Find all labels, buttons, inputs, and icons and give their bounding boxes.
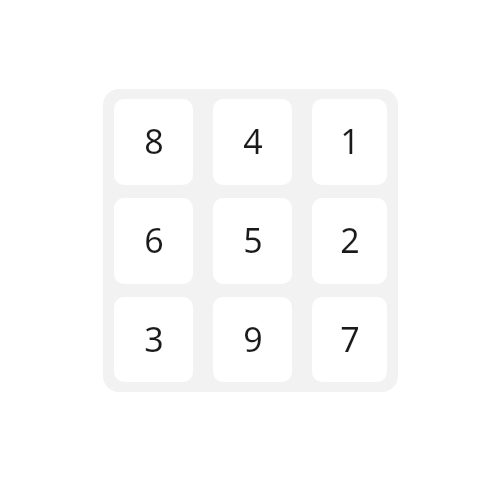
staticText: 8 — [144, 118, 164, 164]
button[interactable]: 2 — [312, 198, 387, 284]
button[interactable]: 4 — [213, 99, 292, 185]
staticText: 3 — [144, 316, 164, 362]
staticText: 1 — [340, 118, 360, 164]
button[interactable]: 3 — [114, 297, 193, 382]
staticText: 7 — [340, 316, 360, 362]
button[interactable]: 1 — [312, 99, 387, 185]
staticText: 4 — [243, 118, 263, 164]
staticText: 2 — [340, 217, 360, 263]
staticText: 6 — [144, 217, 164, 263]
staticText: 9 — [243, 316, 263, 362]
button[interactable]: 7 — [312, 297, 387, 382]
button[interactable]: 9 — [213, 297, 292, 382]
button[interactable]: 6 — [114, 198, 193, 284]
staticText: 5 — [243, 217, 263, 263]
button[interactable]: 8 — [114, 99, 193, 185]
button[interactable]: 5 — [213, 198, 292, 284]
